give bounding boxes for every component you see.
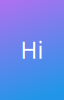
staticText: Hi xyxy=(20,35,43,65)
